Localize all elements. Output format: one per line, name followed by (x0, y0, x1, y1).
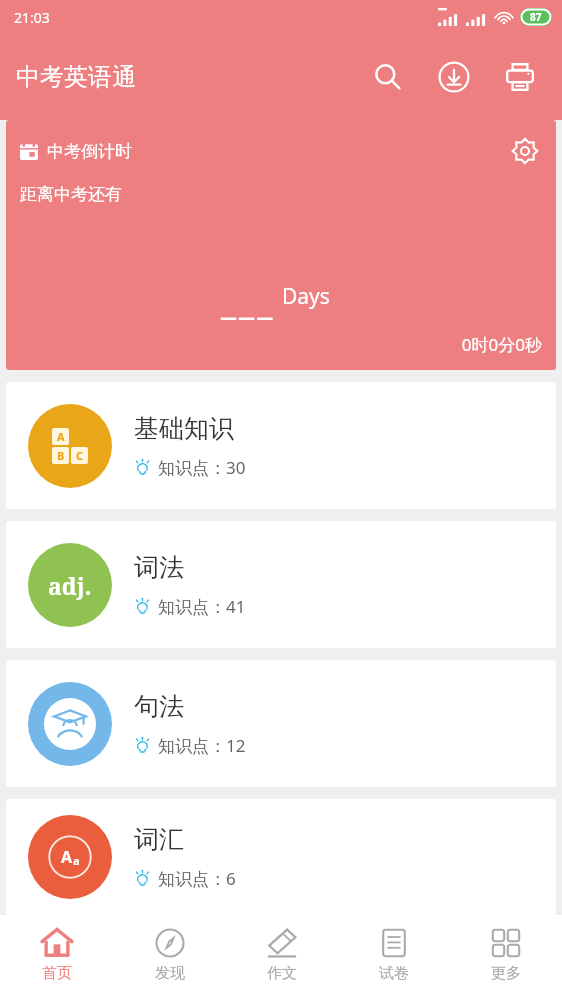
staticText: 21:03 (14, 8, 50, 27)
staticText: adj. (48, 570, 92, 601)
staticText: 中考倒计时 (47, 141, 132, 162)
staticText: 知识点：30 (158, 456, 246, 479)
staticText: 词汇 (134, 824, 184, 855)
staticText: 句法 (134, 691, 184, 722)
staticText: Days (282, 282, 330, 311)
staticText: A (57, 429, 65, 444)
staticText: 距离中考还有 (20, 184, 122, 205)
staticText: A (61, 846, 73, 868)
button[interactable]: 更多 (450, 915, 562, 1000)
button[interactable]: 句法 (6, 660, 556, 787)
button[interactable]: adj. (6, 521, 556, 648)
button[interactable]: 首页 (0, 915, 113, 1000)
button[interactable]: Search (362, 51, 414, 103)
staticText: 发现 (155, 964, 185, 983)
staticText: 知识点：6 (158, 867, 236, 890)
button[interactable]: 发现 (113, 915, 226, 1000)
button[interactable]: 试卷 (338, 915, 450, 1000)
button[interactable]: Settings (508, 134, 542, 168)
staticText: 87 (530, 10, 542, 24)
staticText: 更多 (491, 964, 521, 983)
staticText: 词法 (134, 552, 184, 583)
button[interactable]: Download (428, 51, 480, 103)
staticText: a (73, 853, 80, 868)
staticText: ___ (221, 279, 276, 325)
button[interactable]: A (6, 799, 556, 915)
button[interactable]: 作文 (226, 915, 338, 1000)
staticText: 基础知识 (134, 413, 234, 444)
staticText: C (76, 448, 84, 463)
staticText: B (57, 448, 65, 463)
staticText: 知识点：12 (158, 734, 246, 757)
button[interactable]: Print (494, 51, 546, 103)
staticText: 0时0分0秒 (20, 333, 542, 356)
button[interactable]: 中考倒计时 (6, 120, 556, 370)
button[interactable]: A (6, 382, 556, 509)
staticText: 试卷 (379, 964, 409, 983)
staticText: 中考英语通 (16, 62, 136, 92)
staticText: 知识点：41 (158, 595, 246, 618)
staticText: 作文 (267, 964, 297, 983)
staticText: 首页 (42, 964, 72, 983)
